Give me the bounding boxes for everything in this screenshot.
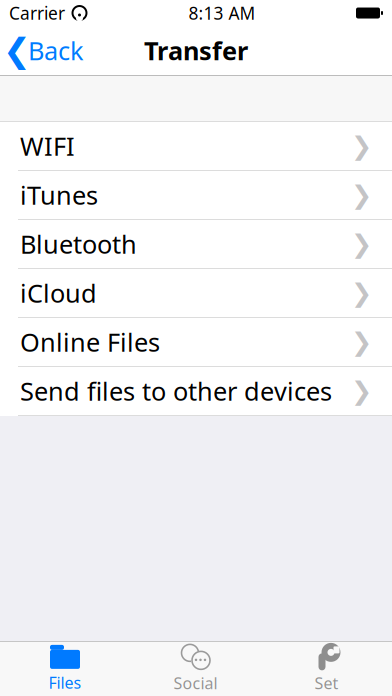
staticText: ❮ (3, 32, 31, 69)
button[interactable]: ❮ (0, 28, 92, 73)
staticText: iCloud (20, 276, 97, 310)
staticText: Set (314, 672, 338, 694)
button[interactable]: Set (261, 642, 392, 696)
staticText: ❯ (351, 279, 372, 307)
staticText: ❯ (351, 328, 372, 356)
button[interactable]: Send files to other devices (0, 367, 392, 416)
button[interactable]: Social (130, 642, 261, 696)
button[interactable]: Online Files (0, 318, 392, 367)
button[interactable]: Bluetooth (0, 220, 392, 269)
button[interactable]: iTunes (0, 171, 392, 220)
staticText: Social (173, 672, 217, 694)
staticText: iTunes (20, 178, 98, 212)
button[interactable]: WIFI (0, 122, 392, 171)
staticText: Bluetooth (20, 227, 137, 261)
staticText: 8:13 AM (188, 1, 255, 24)
staticText: Online Files (20, 325, 160, 359)
staticText: ❯ (351, 181, 372, 209)
staticText: ❯ (351, 132, 372, 160)
button[interactable]: iCloud (0, 269, 392, 318)
staticText: Files (48, 672, 81, 693)
staticText: ❯ (351, 377, 372, 405)
staticText: Carrier (9, 1, 65, 24)
staticText: Transfer (144, 34, 248, 67)
staticText: ❯ (351, 230, 372, 258)
staticText: WIFI (20, 129, 75, 163)
staticText: Send files to other devices (20, 374, 332, 408)
button[interactable]: Files (0, 642, 130, 696)
staticText: Back (28, 34, 84, 67)
